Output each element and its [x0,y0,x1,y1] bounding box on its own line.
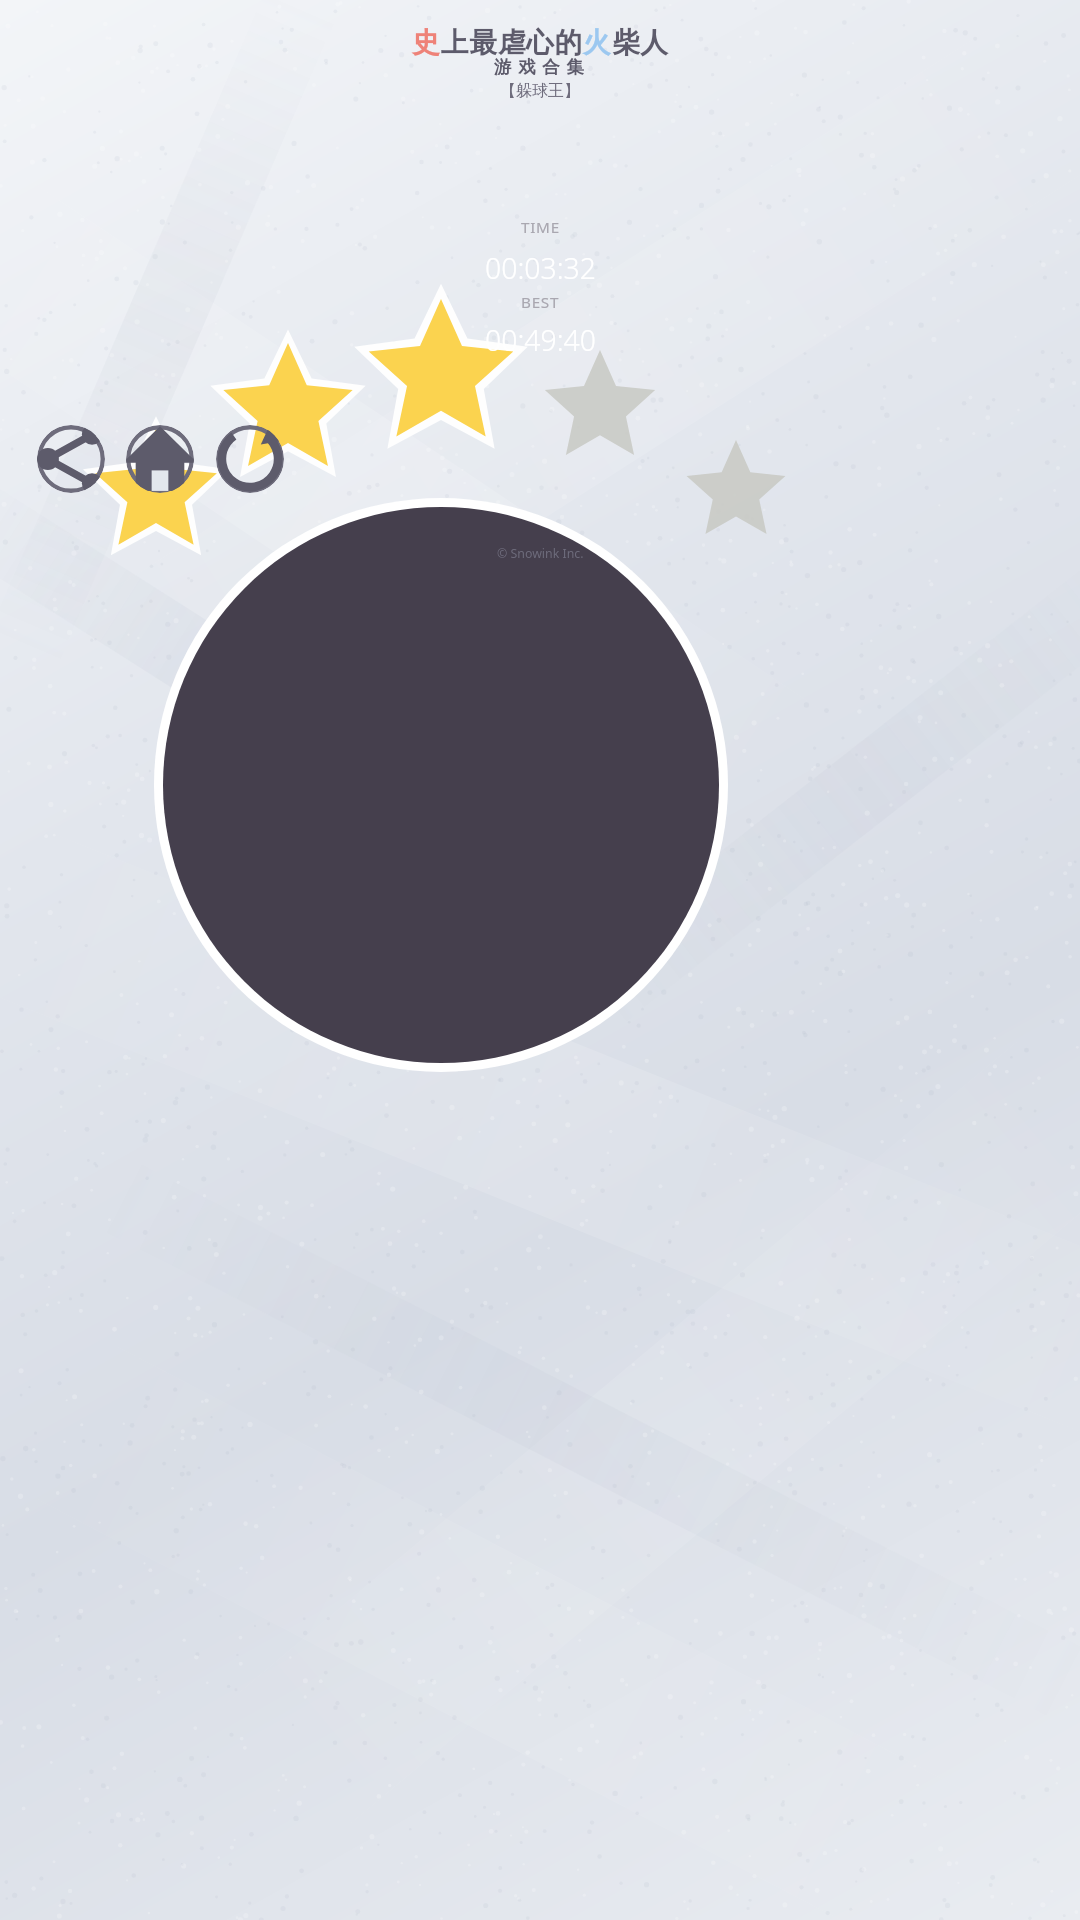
button[interactable]: Home [126,425,194,493]
staticText: TIME [521,217,560,238]
button[interactable]: Share [37,425,105,493]
button[interactable]: Replay [216,425,284,493]
staticText: BEST [521,292,560,313]
staticText: 火 [583,25,612,60]
staticText: 【躲球王】 [500,81,580,101]
staticText: 00:49:40 [485,321,596,360]
staticText: © Snowink Inc. [497,545,584,562]
staticText: 上最虐心的 [441,25,583,60]
staticText: 游 戏 合 集 [494,54,586,78]
staticText: 柴人 [612,25,669,60]
staticText: 史 [412,25,441,60]
staticText: 00:03:32 [485,249,596,288]
